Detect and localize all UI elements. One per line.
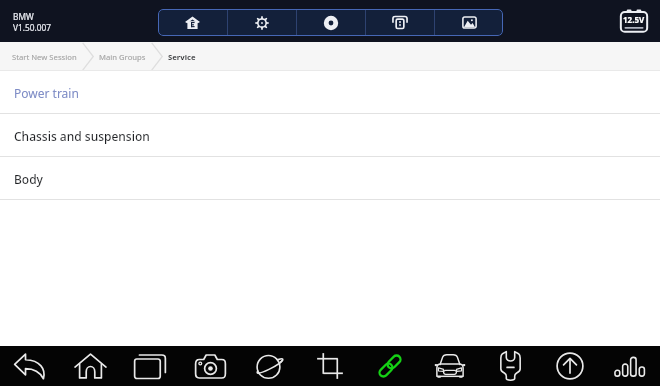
staticText: 12.5V xyxy=(623,14,645,25)
staticText: Power train xyxy=(14,85,79,101)
button[interactable]: Recent apps xyxy=(120,346,180,386)
staticText: Chassis and suspension xyxy=(14,128,150,144)
button[interactable]: Browser xyxy=(240,346,300,386)
button[interactable]: Screenshot xyxy=(180,346,240,386)
staticText: Service xyxy=(168,52,196,62)
other: Battery voltage 12.5V xyxy=(620,9,648,33)
button[interactable]: Back xyxy=(0,346,60,386)
button[interactable]: Vehicle xyxy=(420,346,480,386)
button[interactable]: Settings xyxy=(228,9,296,36)
button[interactable]: Signal strength xyxy=(600,346,660,386)
staticText: Start New Session xyxy=(12,52,77,62)
button[interactable]: Main Groups xyxy=(94,42,151,71)
button[interactable]: Chassis and suspension xyxy=(0,114,660,157)
button[interactable]: Home xyxy=(158,9,227,36)
button[interactable]: Diagnostics xyxy=(480,346,540,386)
button[interactable]: Body xyxy=(0,157,660,200)
button[interactable]: Start New Session xyxy=(7,42,82,71)
button[interactable]: Connection status xyxy=(360,346,420,386)
button[interactable]: Home xyxy=(60,346,120,386)
button[interactable]: Print xyxy=(366,9,434,36)
button[interactable]: Record xyxy=(297,9,365,36)
staticText: V1.50.007 xyxy=(13,22,51,33)
button[interactable]: Screenshot xyxy=(435,9,503,36)
button[interactable]: Service xyxy=(163,42,201,71)
staticText: Main Groups xyxy=(99,52,146,62)
button[interactable]: Upload xyxy=(540,346,600,386)
staticText: BMW xyxy=(13,11,34,22)
button[interactable]: Crop xyxy=(300,346,360,386)
staticText: Body xyxy=(14,171,43,187)
button[interactable]: Power train xyxy=(0,71,660,114)
